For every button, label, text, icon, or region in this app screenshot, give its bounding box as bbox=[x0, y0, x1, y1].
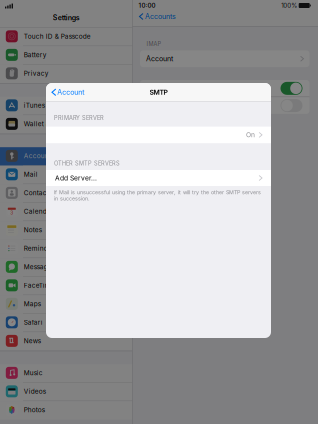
staticText: 3 bbox=[10, 210, 13, 215]
staticText: Touch ID & Passcode bbox=[24, 32, 91, 40]
button[interactable]: Account bbox=[46, 83, 84, 101]
button[interactable]: Account bbox=[140, 50, 309, 67]
staticText: IMAP bbox=[146, 40, 161, 47]
staticText: Mail bbox=[24, 170, 38, 178]
staticText: 100% bbox=[281, 2, 297, 9]
staticText: Notes bbox=[24, 226, 42, 234]
staticText: FaceTime bbox=[24, 281, 55, 289]
button[interactable]: Privacy bbox=[0, 65, 132, 83]
button[interactable]: Messages bbox=[0, 258, 132, 277]
button[interactable]: iTunes & App Store bbox=[0, 97, 132, 115]
staticText: Wallet & Apple Pay bbox=[24, 120, 85, 128]
button[interactable]: Battery bbox=[0, 46, 132, 65]
staticText: Settings bbox=[53, 13, 80, 22]
staticText: Calendar bbox=[24, 207, 53, 215]
staticText: SMTP bbox=[149, 88, 167, 96]
button[interactable]: Accounts & Passwords bbox=[0, 147, 132, 166]
button[interactable]: News bbox=[0, 332, 132, 351]
staticText: Privacy bbox=[24, 69, 49, 77]
button[interactable]: On bbox=[46, 127, 271, 143]
staticText: Reminders bbox=[24, 244, 57, 252]
button[interactable]: Photos bbox=[0, 401, 132, 420]
staticText: Music bbox=[24, 369, 43, 377]
staticText: OTHER SMTP SERVERS bbox=[54, 160, 120, 167]
staticText: Maps bbox=[24, 300, 41, 308]
staticText: Battery bbox=[24, 51, 47, 59]
button[interactable]: Notes bbox=[0, 221, 132, 240]
button[interactable]: Reminders bbox=[0, 240, 132, 258]
button[interactable]: Wallet & Apple Pay bbox=[0, 115, 132, 134]
staticText: Contacts bbox=[24, 189, 52, 197]
staticText: Accounts bbox=[145, 12, 176, 21]
button[interactable]: Music bbox=[0, 364, 132, 383]
button[interactable]: FaceTime bbox=[0, 277, 132, 295]
staticText: iTunes & App Store bbox=[24, 101, 84, 109]
staticText: If Mail is unsuccessful using the primar… bbox=[54, 189, 261, 202]
button[interactable]: Touch ID & Passcode bbox=[0, 28, 132, 46]
button[interactable]: Mail bbox=[0, 166, 132, 184]
staticText: 10:00 bbox=[139, 2, 156, 9]
staticText: News bbox=[24, 337, 41, 345]
staticText: Messages bbox=[24, 263, 55, 271]
button[interactable]: Safari bbox=[0, 314, 132, 332]
staticText: PRIMARY SERVER bbox=[54, 114, 104, 121]
button[interactable]: Accounts bbox=[132, 11, 176, 22]
button[interactable]: Videos bbox=[0, 383, 132, 401]
button[interactable]: Add Server... bbox=[46, 170, 271, 186]
staticText: Add Server... bbox=[55, 174, 97, 182]
staticText: On bbox=[246, 131, 255, 139]
staticText: Videos bbox=[24, 387, 46, 395]
staticText: Accounts & Passwords bbox=[24, 152, 94, 160]
staticText: Account bbox=[146, 54, 173, 63]
button[interactable]: Maps bbox=[0, 295, 132, 314]
staticText: Account bbox=[57, 88, 84, 96]
staticText: Photos bbox=[24, 406, 45, 414]
button[interactable]: 3 bbox=[0, 203, 132, 221]
staticText: Safari bbox=[24, 318, 43, 326]
button[interactable]: Contacts bbox=[0, 184, 132, 203]
